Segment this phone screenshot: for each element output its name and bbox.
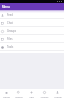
staticText: Search (15, 95, 23, 98)
staticText: Chat (7, 21, 13, 25)
staticText: Profile (54, 95, 62, 98)
staticText: Feed (7, 13, 13, 17)
staticText: Tools (7, 45, 14, 49)
button[interactable]: Home (0, 89, 12, 100)
button[interactable]: Groups (0, 27, 64, 35)
staticText: Menu (2, 5, 10, 9)
staticText: Activity (40, 95, 49, 98)
button[interactable]: Feed (0, 11, 64, 19)
button[interactable]: Activity (38, 89, 51, 100)
button[interactable]: Files (0, 35, 64, 43)
staticText: Groups (7, 29, 16, 33)
button[interactable]: Add (25, 89, 38, 100)
staticText: Home (3, 95, 10, 98)
button[interactable]: Tools (0, 43, 64, 51)
button[interactable]: Chat (0, 19, 64, 27)
button[interactable]: Profile (51, 89, 64, 100)
staticText: Add (29, 95, 34, 98)
button[interactable]: Search (12, 89, 25, 100)
staticText: Files (7, 37, 13, 41)
